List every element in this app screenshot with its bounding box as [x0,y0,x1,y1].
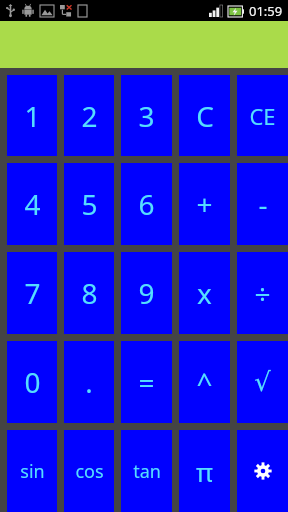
button[interactable]: tan [121,430,172,512]
staticText: 3 [138,97,155,135]
button[interactable]: C [179,75,230,156]
staticText: 0 [24,363,41,401]
button[interactable]: x [179,252,230,334]
button[interactable]: 2 [64,75,114,156]
staticText: = [138,363,155,401]
button[interactable]: π [179,430,230,512]
button[interactable]: ^ [179,341,230,423]
button[interactable]: ÷ [237,252,288,334]
staticText: 01:59 [249,2,283,20]
staticText: - [258,185,268,223]
staticText: . [85,363,93,401]
button[interactable]: 3 [121,75,172,156]
staticText: C [196,97,214,135]
button[interactable]: 6 [121,163,172,245]
button[interactable]: √ [237,341,288,423]
button[interactable]: cos [64,430,114,512]
staticText: 2 [81,97,98,135]
staticText: 4 [24,185,41,223]
button[interactable]: Settings [237,430,288,512]
staticText: π [196,454,213,489]
button[interactable]: 1 [7,75,57,156]
staticText: 1 [24,97,41,135]
button[interactable]: 5 [64,163,114,245]
button[interactable]: CE [237,75,288,156]
staticText: tan [133,459,161,484]
staticText: 7 [24,274,41,312]
button[interactable]: 9 [121,252,172,334]
button[interactable]: + [179,163,230,245]
staticText: CE [249,101,276,131]
button[interactable]: - [237,163,288,245]
staticText: + [196,185,213,223]
staticText: cos [75,459,104,484]
button[interactable]: sin [7,430,57,512]
staticText: 5 [81,185,98,223]
button[interactable]: 7 [7,252,57,334]
button[interactable]: 0 [7,341,57,423]
staticText: sin [20,459,45,484]
staticText: √ [254,367,271,397]
staticText: 9 [138,274,155,312]
staticText: 8 [81,274,98,312]
button[interactable]: 4 [7,163,57,245]
staticText: x [197,274,212,312]
staticText: 6 [138,185,155,223]
button[interactable]: 8 [64,252,114,334]
staticText: ^ [196,363,213,401]
button[interactable]: = [121,341,172,423]
button[interactable]: . [64,341,114,423]
staticText: ÷ [254,274,271,312]
